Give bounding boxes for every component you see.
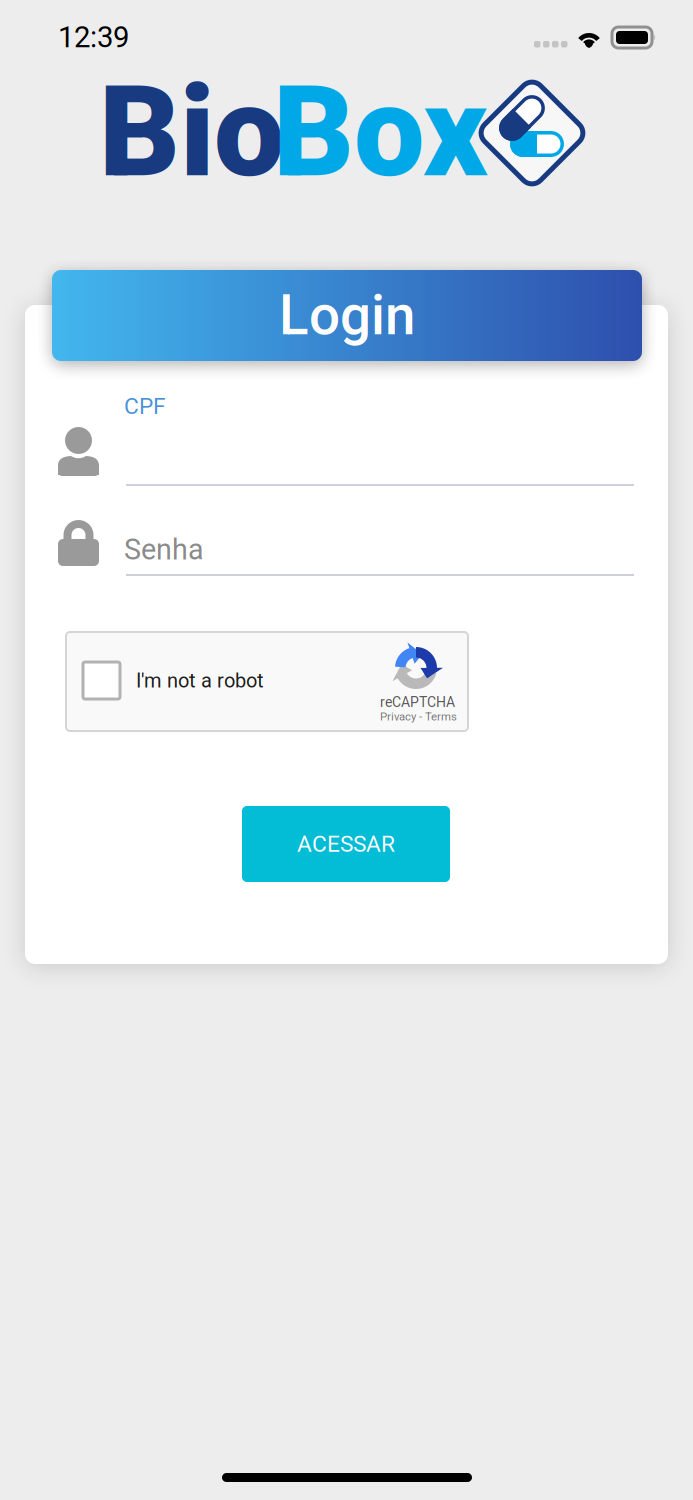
staticText: Bio <box>99 59 284 206</box>
staticText: 12:39 <box>58 20 129 54</box>
staticText: reCAPTCHA <box>380 694 455 710</box>
staticText: Senha <box>124 533 204 567</box>
staticText: Box <box>273 59 488 206</box>
staticText: I'm not a robot <box>136 669 264 692</box>
staticText: Privacy - Terms <box>380 710 457 723</box>
staticText: Login <box>279 283 415 348</box>
staticText: CPF <box>124 393 166 420</box>
button[interactable]: CPF <box>124 386 634 486</box>
button[interactable]: Senha <box>124 512 634 576</box>
button[interactable]: I'm not a robot <box>66 632 468 731</box>
staticText: ACESSAR <box>297 831 395 857</box>
button[interactable]: ACESSAR <box>242 806 450 882</box>
